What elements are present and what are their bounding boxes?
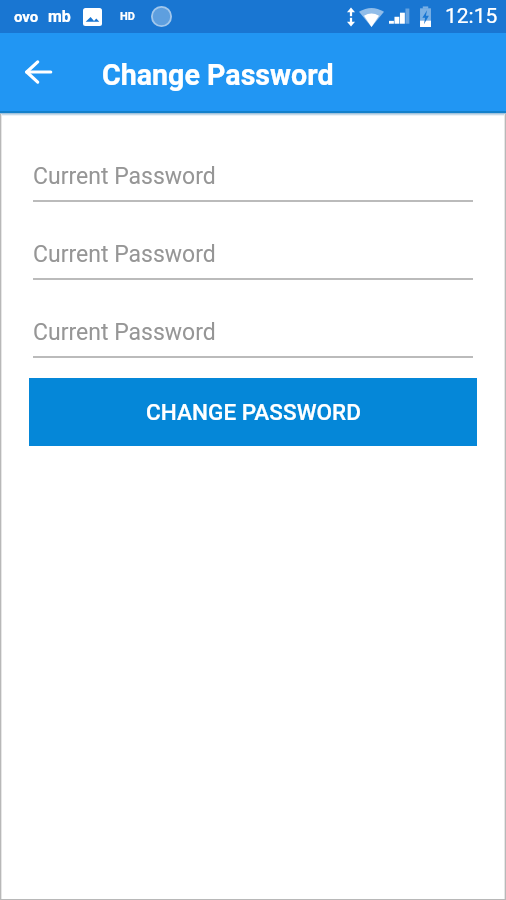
button[interactable]: Back [14, 48, 62, 96]
staticText: ovo [14, 8, 39, 26]
button[interactable]: CHANGE PASSWORD [29, 378, 477, 446]
staticText: Change Password [102, 58, 334, 92]
staticText: mb [48, 7, 71, 26]
staticText: Current Password [33, 241, 216, 268]
staticText: Current Password [33, 163, 216, 190]
staticText: Current Password [33, 319, 216, 346]
staticText: 12:15 [445, 4, 498, 29]
staticText: CHANGE PASSWORD [146, 399, 361, 425]
staticText: HD [120, 10, 135, 23]
